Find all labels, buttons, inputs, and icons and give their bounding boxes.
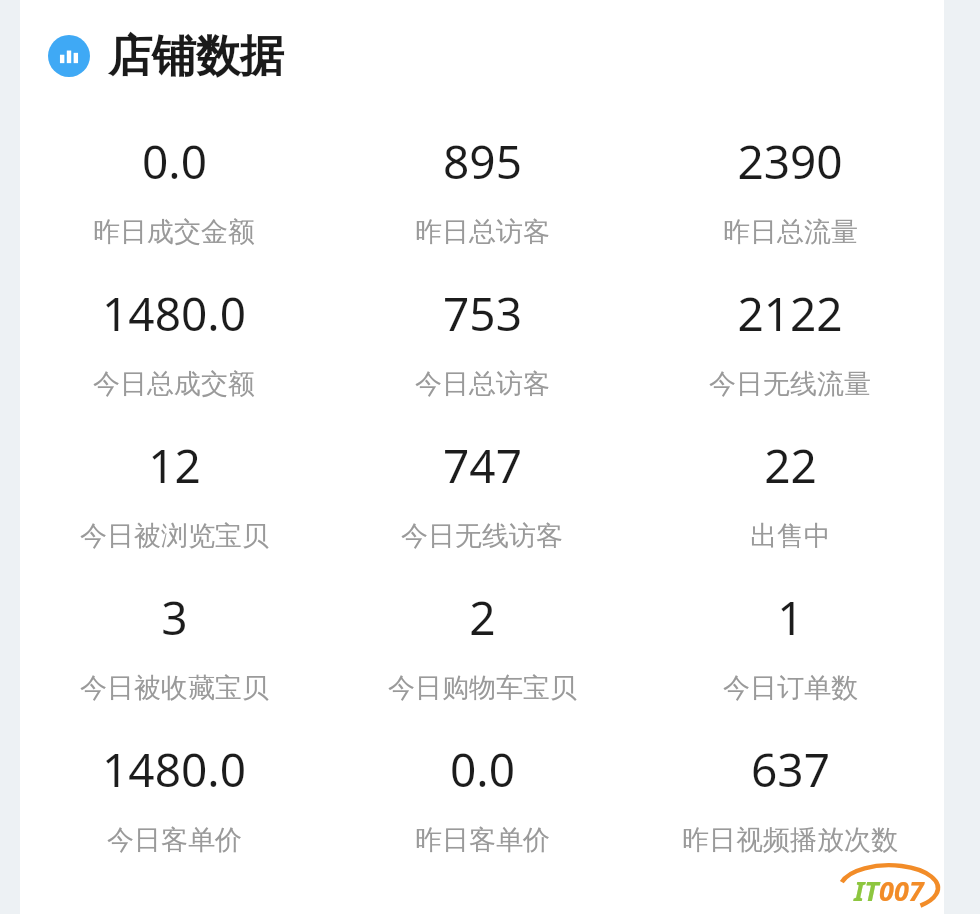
staticText: 1480.0	[102, 738, 246, 801]
other: 店铺数据图标	[48, 35, 90, 77]
staticText: 1	[777, 586, 804, 649]
staticText: 出售中	[750, 519, 831, 553]
staticText: 今日购物车宝贝	[388, 671, 577, 705]
staticText: 0.0	[142, 130, 207, 193]
staticText: 店铺数据	[108, 29, 284, 84]
staticText: 753	[443, 282, 522, 345]
staticText: 今日被浏览宝贝	[80, 519, 269, 553]
staticText: IT	[854, 872, 879, 909]
staticText: 0.0	[450, 738, 515, 801]
staticText: 昨日总流量	[723, 215, 858, 249]
staticText: 昨日视频播放次数	[682, 823, 898, 857]
staticText: 昨日总访客	[415, 215, 550, 249]
button[interactable]: 2	[328, 568, 636, 720]
button[interactable]: 895	[328, 112, 636, 264]
button[interactable]: 1480.0	[20, 264, 328, 416]
staticText: 2390	[737, 130, 843, 193]
staticText: 747	[443, 434, 522, 497]
staticText: 3	[161, 586, 188, 649]
button[interactable]: 637	[636, 720, 944, 872]
button[interactable]: 0.0	[328, 720, 636, 872]
staticText: 今日无线访客	[401, 519, 563, 553]
button[interactable]: 2122	[636, 264, 944, 416]
staticText: 895	[443, 130, 522, 193]
button[interactable]: 店铺数据图标	[20, 0, 944, 112]
staticText: 今日总访客	[415, 367, 550, 401]
button[interactable]: 1480.0	[20, 720, 328, 872]
staticText: 2122	[737, 282, 843, 345]
button[interactable]: 0.0	[20, 112, 328, 264]
staticText: 今日订单数	[723, 671, 858, 705]
staticText: 昨日成交金额	[93, 215, 255, 249]
staticText: 2	[469, 586, 496, 649]
staticText: 007	[879, 872, 924, 909]
button[interactable]: 3	[20, 568, 328, 720]
button[interactable]: 2390	[636, 112, 944, 264]
staticText: 昨日客单价	[415, 823, 550, 857]
button[interactable]: 12	[20, 416, 328, 568]
button[interactable]: 1	[636, 568, 944, 720]
staticText: 637	[751, 738, 830, 801]
staticText: 今日无线流量	[709, 367, 871, 401]
staticText: 今日客单价	[107, 823, 242, 857]
staticText: 22	[764, 434, 817, 497]
staticText: 1480.0	[102, 282, 246, 345]
button[interactable]: 747	[328, 416, 636, 568]
staticText: 今日被收藏宝贝	[80, 671, 269, 705]
staticText: 12	[148, 434, 201, 497]
button[interactable]: 753	[328, 264, 636, 416]
staticText: 今日总成交额	[93, 367, 255, 401]
button[interactable]: 22	[636, 416, 944, 568]
